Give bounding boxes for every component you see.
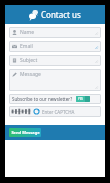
button[interactable]: Subject	[9, 55, 101, 66]
staticText: Email	[20, 43, 94, 50]
staticText: Contact us	[41, 9, 81, 20]
staticText: YES	[78, 97, 84, 101]
button[interactable]: Email	[9, 41, 101, 52]
button[interactable]: Send Message	[9, 128, 41, 137]
button[interactable]: Subscribe toggle	[76, 96, 90, 102]
staticText: Name	[20, 29, 94, 36]
button[interactable]: Subscribe to our newsletter?	[9, 94, 101, 104]
staticText: Subscribe to our newsletter?	[12, 96, 73, 102]
staticText: Message	[20, 71, 41, 78]
staticText: Send Message	[11, 130, 40, 135]
button[interactable]: Message	[9, 69, 101, 91]
button[interactable]: Refresh CAPTCHA	[33, 108, 40, 115]
staticText: Enter CAPTCHA	[42, 109, 99, 115]
staticText: Subject	[20, 57, 94, 64]
button[interactable]: Name	[9, 27, 101, 38]
